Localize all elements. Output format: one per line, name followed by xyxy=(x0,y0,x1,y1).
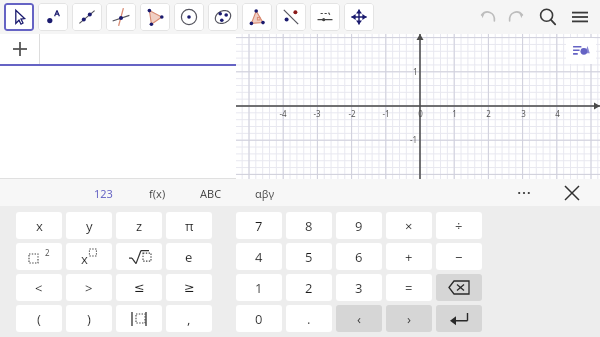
button[interactable]: POW xyxy=(66,243,112,270)
staticText: 2 xyxy=(305,279,313,297)
staticText: 4 xyxy=(255,248,263,266)
staticText: x xyxy=(36,217,43,235)
staticText: 3 xyxy=(355,279,363,297)
staticText: π xyxy=(185,217,194,235)
button[interactable]: , xyxy=(166,305,212,332)
staticText: . xyxy=(307,310,311,328)
button[interactable]: 123 xyxy=(78,180,128,206)
button[interactable]: × xyxy=(386,212,432,239)
staticText: 1 xyxy=(452,108,457,119)
button[interactable]: = xyxy=(386,274,432,301)
button[interactable]: > xyxy=(66,274,112,301)
staticText: = xyxy=(405,279,413,297)
button[interactable]: 9 xyxy=(336,212,382,239)
staticText: 1 xyxy=(413,66,418,77)
staticText: e xyxy=(185,248,193,266)
staticText: , xyxy=(187,310,191,328)
staticText: ‹ xyxy=(357,310,362,328)
staticText: 123 xyxy=(94,186,113,201)
staticText: 2 xyxy=(45,247,50,258)
button[interactable]: 7 xyxy=(236,212,282,239)
button[interactable]: 3 xyxy=(336,274,382,301)
button[interactable]: ABS xyxy=(116,305,162,332)
staticText: 0 xyxy=(418,108,423,119)
button[interactable]: Search xyxy=(534,3,562,31)
button[interactable]: Tool xyxy=(38,3,68,31)
button[interactable]: DEL xyxy=(436,274,482,301)
staticText: ABC xyxy=(200,186,222,201)
button[interactable]: αβγ xyxy=(240,180,290,206)
button[interactable]: 0 xyxy=(236,305,282,332)
button[interactable]: x xyxy=(16,212,62,239)
button[interactable]: ≥ xyxy=(166,274,212,301)
button[interactable]: e xyxy=(166,243,212,270)
button[interactable]: + xyxy=(386,243,432,270)
button[interactable]: ENTER xyxy=(436,305,482,332)
button[interactable]: ( xyxy=(16,305,62,332)
button[interactable]: Tool xyxy=(344,3,374,31)
button[interactable]: Add input xyxy=(0,34,236,64)
staticText: › xyxy=(407,310,412,328)
staticText: ) xyxy=(87,310,91,328)
staticText: x xyxy=(81,250,88,268)
staticText: 6 xyxy=(355,248,363,266)
staticText: ÷ xyxy=(455,217,463,235)
button[interactable]: < xyxy=(16,274,62,301)
button[interactable]: 5 xyxy=(286,243,332,270)
button[interactable]: › xyxy=(386,305,432,332)
staticText: -1 xyxy=(410,134,418,145)
button[interactable]: − xyxy=(436,243,482,270)
button[interactable]: z xyxy=(116,212,162,239)
button[interactable]: Redo xyxy=(502,3,530,31)
button[interactable]: . xyxy=(286,305,332,332)
staticText: -4 xyxy=(279,108,287,119)
staticText: y xyxy=(86,217,93,235)
button[interactable]: ≤ xyxy=(116,274,162,301)
staticText: f(x) xyxy=(149,186,166,201)
button[interactable]: 4 xyxy=(236,243,282,270)
button[interactable]: Close keyboard xyxy=(558,179,586,206)
staticText: ( xyxy=(37,310,41,328)
button[interactable]: More xyxy=(510,179,538,206)
staticText: ≤ xyxy=(134,280,145,295)
button[interactable]: ÷ xyxy=(436,212,482,239)
button[interactable]: SQ xyxy=(16,243,62,270)
button[interactable]: Tool xyxy=(106,3,136,31)
button[interactable]: Tool xyxy=(276,3,306,31)
staticText: < xyxy=(35,279,43,297)
staticText: -3 xyxy=(313,108,321,119)
button[interactable]: Menu xyxy=(566,3,594,31)
staticText: > xyxy=(85,279,93,297)
staticText: z xyxy=(136,217,143,235)
button[interactable]: ) xyxy=(66,305,112,332)
button[interactable]: Graphics settings xyxy=(566,38,596,64)
staticText: × xyxy=(405,217,413,235)
button[interactable]: f(x) xyxy=(132,180,182,206)
button[interactable]: 8 xyxy=(286,212,332,239)
button[interactable]: Tool xyxy=(174,3,204,31)
staticText: 7 xyxy=(255,217,263,235)
button[interactable]: 2 xyxy=(286,274,332,301)
staticText: 0 xyxy=(255,310,263,328)
staticText: αβγ xyxy=(255,186,275,201)
button[interactable]: Tool xyxy=(140,3,170,31)
button[interactable]: π xyxy=(166,212,212,239)
button[interactable]: y xyxy=(66,212,112,239)
staticText: 9 xyxy=(355,217,363,235)
staticText: -1 xyxy=(382,108,390,119)
staticText: 4 xyxy=(555,108,560,119)
button[interactable]: SQRT xyxy=(116,243,162,270)
staticText: 2 xyxy=(486,108,491,119)
staticText: − xyxy=(455,248,463,266)
button[interactable]: Tool xyxy=(208,3,238,31)
staticText: ≥ xyxy=(184,280,195,295)
button[interactable]: 6 xyxy=(336,243,382,270)
button[interactable]: ‹ xyxy=(336,305,382,332)
button[interactable]: Tool xyxy=(4,3,34,31)
button[interactable]: Tool xyxy=(72,3,102,31)
button[interactable]: 1 xyxy=(236,274,282,301)
button[interactable]: Tool xyxy=(310,3,340,31)
button[interactable]: Tool xyxy=(242,3,272,31)
button[interactable]: Undo xyxy=(474,3,502,31)
button[interactable]: ABC xyxy=(186,180,236,206)
